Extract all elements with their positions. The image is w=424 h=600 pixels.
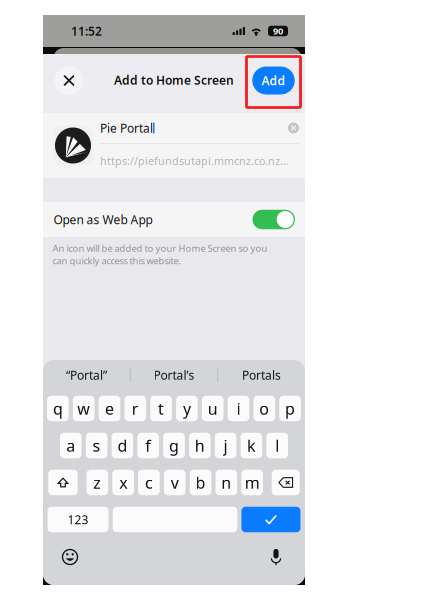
button[interactable]: v bbox=[164, 470, 185, 495]
button[interactable]: x bbox=[112, 470, 134, 495]
staticText: Add bbox=[261, 72, 285, 88]
button[interactable]: Done bbox=[241, 507, 300, 532]
staticText: m bbox=[245, 472, 260, 493]
staticText: p bbox=[285, 398, 295, 419]
button[interactable]: 123 bbox=[47, 507, 108, 532]
staticText: j bbox=[224, 435, 228, 456]
button[interactable]: f bbox=[137, 433, 159, 458]
staticText: a bbox=[66, 435, 75, 456]
staticText: l bbox=[275, 435, 279, 456]
button[interactable]: s bbox=[86, 433, 107, 458]
button[interactable]: t bbox=[150, 396, 172, 421]
staticText: q bbox=[53, 398, 63, 419]
staticText: y bbox=[183, 398, 191, 419]
staticText: Portals bbox=[242, 367, 281, 383]
button[interactable]: b bbox=[190, 470, 211, 495]
button[interactable]: Shift bbox=[48, 470, 78, 495]
staticText: i bbox=[236, 398, 240, 419]
button[interactable]: m bbox=[241, 470, 263, 495]
button[interactable]: q bbox=[47, 396, 69, 421]
button[interactable]: Delete bbox=[272, 470, 300, 495]
staticText: Add to Home Screen bbox=[114, 72, 234, 88]
staticText: An icon will be added to your Home Scree… bbox=[52, 242, 267, 267]
staticText: 123 bbox=[67, 511, 88, 527]
staticText: t bbox=[158, 398, 164, 419]
button[interactable]: u bbox=[202, 396, 223, 421]
button[interactable]: Emoji keyboard bbox=[57, 544, 83, 570]
button[interactable]: c bbox=[138, 470, 160, 495]
staticText: e bbox=[105, 398, 114, 419]
staticText: s bbox=[93, 435, 101, 456]
button[interactable]: h bbox=[189, 433, 211, 458]
staticText: 90 bbox=[273, 25, 283, 37]
staticText: https://piefundsutapi.mmcnz.co.nz/... bbox=[100, 154, 291, 168]
button[interactable]: d bbox=[112, 433, 133, 458]
button[interactable]: i bbox=[228, 396, 249, 421]
button[interactable]: e bbox=[99, 396, 120, 421]
staticText: u bbox=[208, 398, 218, 419]
button[interactable]: Close bbox=[50, 62, 87, 99]
staticText: g bbox=[169, 435, 179, 456]
staticText: b bbox=[196, 472, 206, 493]
button[interactable]: p bbox=[279, 396, 301, 421]
button[interactable]: z bbox=[86, 470, 108, 495]
staticText: z bbox=[93, 472, 101, 493]
button[interactable]: Add bbox=[249, 58, 297, 103]
button[interactable]: n bbox=[216, 470, 237, 495]
staticText: v bbox=[171, 472, 179, 493]
staticText: Pie Portal bbox=[100, 120, 153, 136]
button[interactable]: “Portal” bbox=[43, 360, 130, 390]
button[interactable]: Portals bbox=[218, 360, 305, 390]
button[interactable]: k bbox=[241, 433, 262, 458]
staticText: x bbox=[119, 472, 127, 493]
staticText: c bbox=[145, 472, 153, 493]
button[interactable]: l bbox=[266, 433, 288, 458]
button[interactable]: Open as Web App bbox=[43, 202, 305, 237]
staticText: h bbox=[195, 435, 205, 456]
button[interactable]: o bbox=[253, 396, 275, 421]
staticText: k bbox=[247, 435, 256, 456]
button[interactable]: j bbox=[215, 433, 236, 458]
button[interactable]: r bbox=[124, 396, 146, 421]
staticText: d bbox=[117, 435, 127, 456]
staticText: 11:52 bbox=[71, 23, 102, 39]
button[interactable]: a bbox=[60, 433, 82, 458]
staticText: w bbox=[77, 398, 90, 419]
button[interactable]: g bbox=[163, 433, 185, 458]
staticText: Portal’s bbox=[153, 367, 194, 383]
button[interactable]: Dictate bbox=[263, 544, 289, 570]
staticText: o bbox=[259, 398, 269, 419]
staticText: “Portal” bbox=[66, 367, 107, 383]
staticText: n bbox=[221, 472, 231, 493]
staticText: f bbox=[145, 435, 151, 456]
staticText: Open as Web App bbox=[53, 211, 152, 227]
button[interactable]: Portal’s bbox=[131, 360, 217, 390]
button[interactable]: w bbox=[73, 396, 94, 421]
button[interactable]: y bbox=[176, 396, 198, 421]
staticText: r bbox=[132, 398, 139, 419]
